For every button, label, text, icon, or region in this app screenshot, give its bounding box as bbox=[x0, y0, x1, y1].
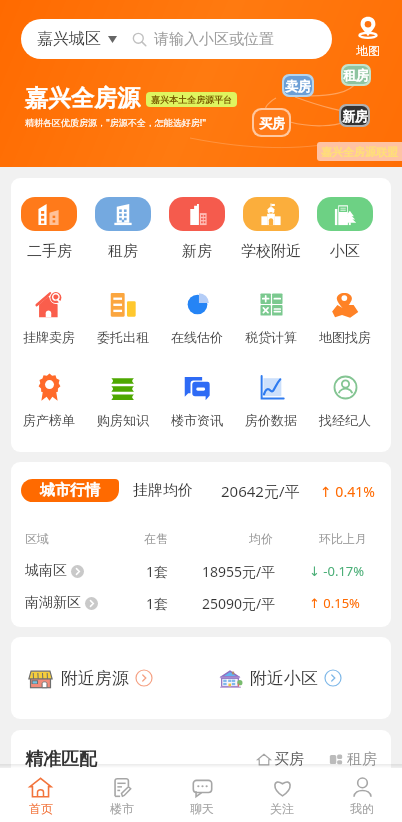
button[interactable]: 地图找房 bbox=[308, 290, 382, 345]
button[interactable]: 买房 bbox=[257, 750, 304, 769]
staticText: ↓ -0.17% bbox=[309, 562, 365, 580]
staticText: 环比上月 bbox=[319, 531, 367, 546]
staticText: 嘉兴城区 bbox=[37, 29, 101, 49]
staticText: 买房 bbox=[274, 750, 304, 769]
button[interactable]: 在线估价 bbox=[160, 290, 234, 345]
staticText: 南湖新区 bbox=[25, 594, 81, 612]
staticText: 均价 bbox=[249, 531, 273, 546]
button[interactable]: 楼市 bbox=[81, 768, 162, 822]
staticText: 嘉兴全房源 bbox=[25, 84, 140, 113]
button[interactable]: 城南区 bbox=[11, 558, 391, 584]
button[interactable]: 城市行情 bbox=[21, 479, 119, 502]
staticText: 委托出租 bbox=[97, 329, 149, 345]
staticText: 嘉兴本土全房源平台 bbox=[151, 94, 232, 105]
staticText: 聊天 bbox=[190, 801, 214, 816]
button[interactable]: 楼市资讯 bbox=[160, 373, 234, 428]
staticText: 地图找房 bbox=[319, 329, 371, 345]
staticText: 关注 bbox=[270, 801, 294, 816]
button[interactable]: 附近小区 bbox=[217, 658, 342, 698]
staticText: 区域 bbox=[25, 531, 49, 546]
staticText: 25090元/平 bbox=[202, 594, 276, 613]
staticText: 楼市 bbox=[110, 801, 134, 816]
staticText: 1套 bbox=[146, 562, 169, 581]
staticText: 附近小区 bbox=[250, 668, 318, 689]
button[interactable]: 新房 bbox=[341, 106, 368, 125]
staticText: 楼市资讯 bbox=[171, 412, 223, 428]
staticText: 城市行情 bbox=[40, 481, 100, 500]
staticText: 挂牌均价 bbox=[133, 481, 193, 500]
button[interactable]: 学校附近 bbox=[234, 197, 308, 261]
button[interactable]: 购房知识 bbox=[86, 373, 160, 428]
staticText: 房价数据 bbox=[245, 412, 297, 428]
button[interactable]: 租房 bbox=[86, 197, 160, 261]
button[interactable]: 地图 bbox=[349, 17, 386, 58]
staticText: 房产榜单 bbox=[23, 412, 75, 428]
button[interactable]: 房价数据 bbox=[234, 373, 308, 428]
staticText: 18955元/平 bbox=[202, 562, 276, 581]
staticText: 新房 bbox=[182, 242, 212, 261]
staticText: 租房 bbox=[108, 242, 138, 261]
button[interactable]: 找经纪人 bbox=[308, 373, 382, 428]
button[interactable]: 首页 bbox=[0, 768, 81, 822]
staticText: 在线估价 bbox=[171, 329, 223, 345]
button[interactable]: 聊天 bbox=[162, 768, 242, 822]
staticText: 我的 bbox=[350, 801, 374, 816]
staticText: 二手房 bbox=[27, 242, 72, 261]
button[interactable]: 嘉兴城区 bbox=[21, 19, 332, 59]
button[interactable]: 小区 bbox=[308, 197, 382, 261]
button[interactable]: 我的 bbox=[322, 768, 402, 822]
staticText: 精准匹配 bbox=[25, 748, 97, 771]
button[interactable]: 房产榜单 bbox=[12, 373, 86, 428]
staticText: 地图 bbox=[356, 43, 380, 58]
button[interactable]: 买房 bbox=[254, 110, 289, 135]
staticText: 精耕各区优质房源，"房源不全，怎能选好房!" bbox=[25, 116, 207, 128]
staticText: 购房知识 bbox=[97, 412, 149, 428]
button[interactable]: 租房 bbox=[329, 750, 377, 769]
staticText: 20642元/平 bbox=[221, 481, 300, 501]
staticText: 1套 bbox=[146, 594, 169, 613]
staticText: 挂牌卖房 bbox=[23, 329, 75, 345]
staticText: 嘉兴全房源联盟 bbox=[321, 145, 398, 159]
staticText: 租房 bbox=[343, 67, 369, 83]
button[interactable]: 委托出租 bbox=[86, 290, 160, 345]
staticText: 在售 bbox=[144, 531, 168, 546]
staticText: 租房 bbox=[347, 750, 377, 769]
staticText: 学校附近 bbox=[241, 242, 301, 261]
button[interactable]: 二手房 bbox=[12, 197, 86, 261]
staticText: 请输入小区或位置 bbox=[154, 30, 274, 49]
button[interactable]: 卖房 bbox=[284, 76, 312, 95]
staticText: 买房 bbox=[259, 115, 285, 131]
button[interactable]: 南湖新区 bbox=[11, 590, 391, 616]
button[interactable]: 附近房源 bbox=[27, 658, 153, 698]
staticText: 税贷计算 bbox=[245, 329, 297, 345]
staticText: ↑ 0.15% bbox=[309, 594, 360, 612]
staticText: 小区 bbox=[330, 242, 360, 261]
staticText: 附近房源 bbox=[61, 668, 129, 689]
staticText: 首页 bbox=[29, 801, 53, 816]
staticText: 新房 bbox=[342, 108, 368, 124]
button[interactable]: 挂牌卖房 bbox=[12, 290, 86, 345]
button[interactable]: 新房 bbox=[160, 197, 234, 261]
staticText: 卖房 bbox=[285, 78, 311, 94]
button[interactable]: 租房 bbox=[343, 66, 369, 84]
button[interactable]: 税贷计算 bbox=[234, 290, 308, 345]
staticText: ↑ 0.41% bbox=[320, 482, 375, 501]
staticText: 城南区 bbox=[25, 562, 67, 580]
staticText: 找经纪人 bbox=[319, 412, 371, 428]
button[interactable]: 关注 bbox=[242, 768, 322, 822]
